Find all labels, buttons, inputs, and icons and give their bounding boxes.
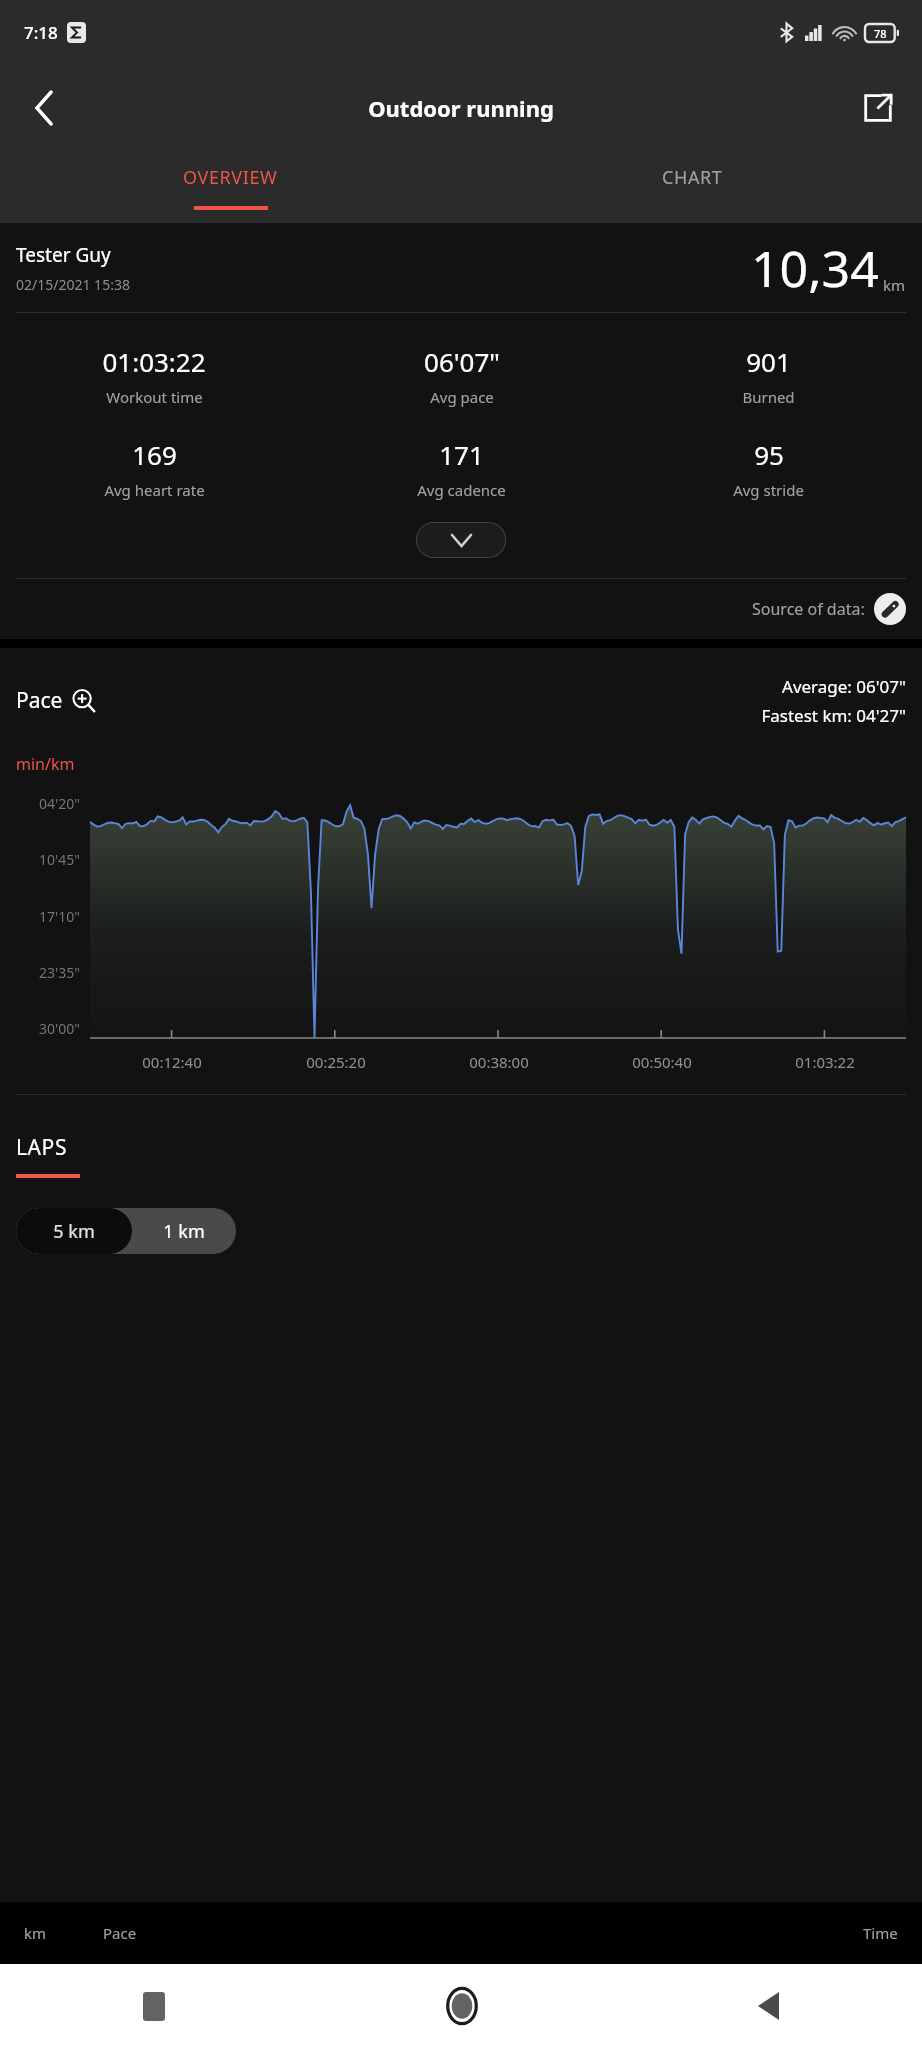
staticText: 01:03:22: [102, 344, 206, 379]
staticText: 95: [754, 437, 784, 472]
staticText: Time: [863, 1923, 898, 1943]
staticText: 10,34: [751, 234, 879, 302]
staticText: Avg pace: [430, 387, 494, 407]
staticText: 901: [746, 344, 791, 379]
staticText: 10'45": [39, 850, 80, 869]
staticText: Pace: [103, 1923, 137, 1943]
staticText: 00:38:00: [469, 1052, 529, 1072]
staticText: 04'20": [39, 794, 80, 813]
staticText: OVERVIEW: [183, 165, 278, 190]
staticText: 00:12:40: [142, 1052, 202, 1072]
button[interactable]: Back: [615, 1964, 922, 2048]
button[interactable]: CHART: [461, 151, 922, 223]
button[interactable]: Recent apps: [0, 1964, 308, 2048]
button[interactable]: Pace: [16, 686, 97, 715]
staticText: 1 km: [163, 1219, 205, 1244]
staticText: min/km: [16, 753, 75, 775]
staticText: CHART: [662, 165, 723, 190]
staticText: 17'10": [39, 907, 80, 926]
button[interactable]: Back: [14, 78, 74, 138]
button[interactable]: 1 km: [132, 1208, 236, 1254]
other: Zoom chart: [71, 688, 97, 714]
staticText: 00:25:20: [306, 1052, 366, 1072]
staticText: 02/15/2021 15:38: [16, 275, 130, 294]
staticText: Avg cadence: [417, 480, 506, 500]
staticText: 169: [132, 437, 177, 472]
staticText: km: [24, 1923, 47, 1943]
button[interactable]: OVERVIEW: [0, 151, 461, 223]
staticText: Tester Guy: [16, 242, 111, 268]
button[interactable]: Home: [308, 1964, 615, 2048]
staticText: Burned: [742, 387, 795, 407]
staticText: 00:50:40: [632, 1052, 692, 1072]
staticText: km: [883, 275, 906, 295]
staticText: Average: 06'07": [782, 675, 906, 698]
staticText: 7:18: [24, 21, 58, 44]
staticText: Pace: [16, 686, 63, 715]
staticText: Outdoor running: [368, 93, 554, 123]
staticText: 01:03:22: [795, 1052, 855, 1072]
staticText: Avg heart rate: [104, 480, 205, 500]
staticText: Source of data:: [752, 598, 865, 620]
staticText: 171: [439, 437, 484, 472]
button[interactable]: Share: [848, 78, 908, 138]
staticText: LAPS: [16, 1133, 68, 1162]
staticText: 78: [874, 26, 887, 41]
staticText: 06'07": [424, 344, 500, 379]
staticText: Workout time: [106, 387, 203, 407]
button[interactable]: 5 km: [16, 1208, 132, 1254]
staticText: Avg stride: [733, 480, 804, 500]
staticText: 5 km: [53, 1219, 95, 1244]
button[interactable]: Source of data:: [752, 593, 906, 625]
staticText: 30'00": [39, 1019, 80, 1038]
staticText: Fastest km: 04'27": [761, 704, 906, 727]
button[interactable]: Show more: [416, 522, 506, 558]
staticText: 23'35": [39, 963, 80, 982]
